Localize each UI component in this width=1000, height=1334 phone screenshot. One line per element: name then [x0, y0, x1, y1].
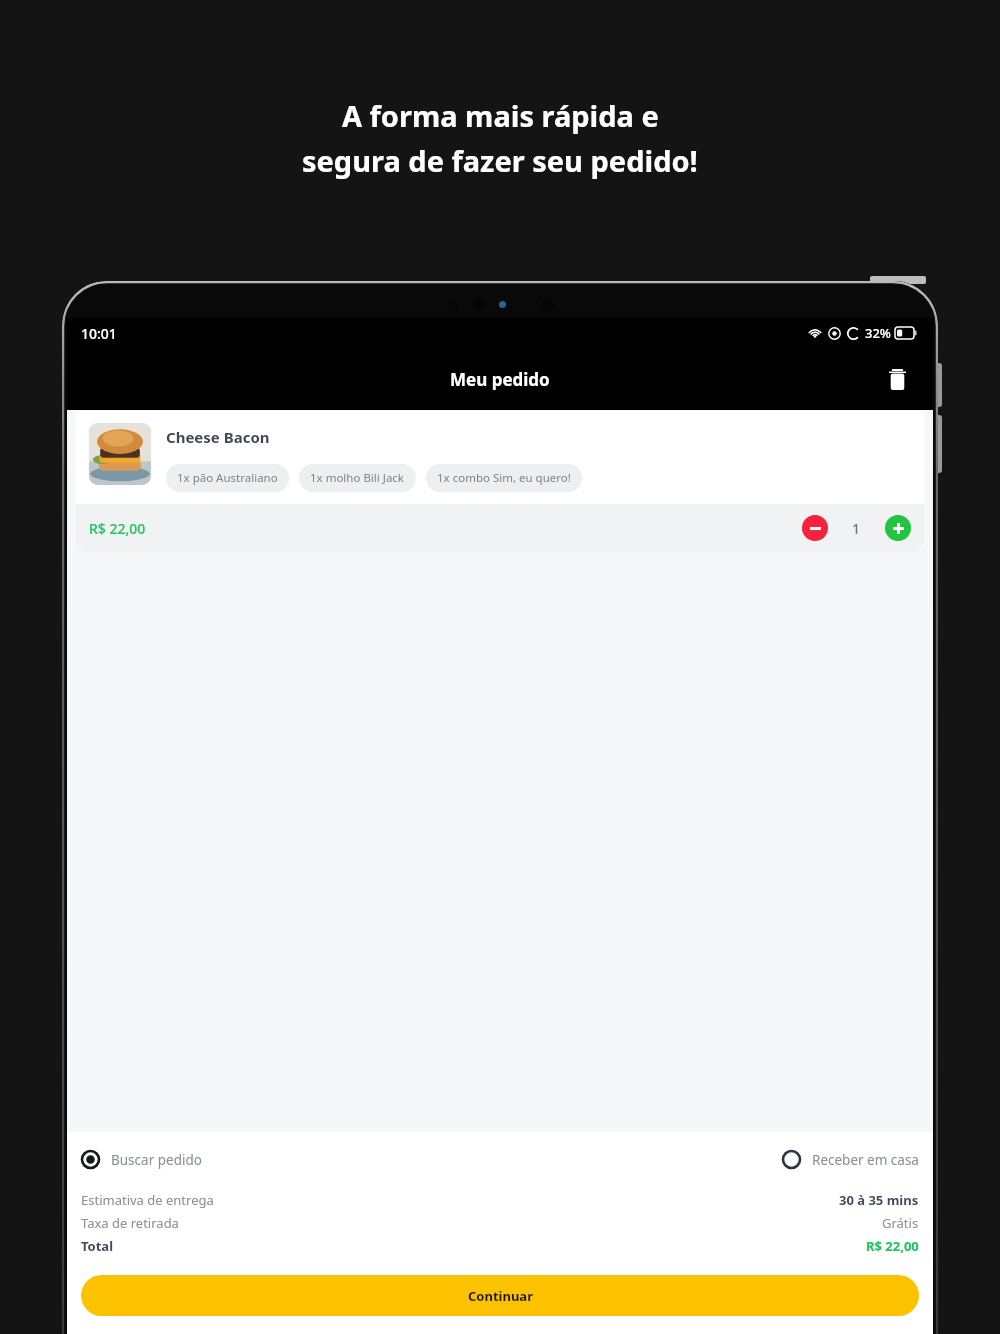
staticText: 30 à 35 mins	[839, 1191, 919, 1209]
button[interactable]: Buscar pedido	[81, 1150, 202, 1169]
staticText: R$ 22,00	[866, 1237, 919, 1255]
staticText: Estimativa de entrega	[81, 1191, 214, 1209]
staticText: Buscar pedido	[111, 1151, 202, 1169]
button[interactable]: Continuar	[81, 1275, 919, 1316]
button[interactable]: 1x combo Sim, eu quero!	[426, 464, 582, 492]
staticText: Grátis	[882, 1214, 919, 1232]
button[interactable]: Cheese Bacon	[76, 411, 924, 552]
staticText: A forma mais rápida e	[342, 96, 659, 135]
button[interactable]: 1x pão Australiano	[166, 464, 289, 492]
button[interactable]: Aumentar	[885, 515, 911, 541]
button[interactable]: Diminuir	[802, 515, 828, 541]
staticText: 1	[852, 519, 861, 538]
staticText: Cheese Bacon	[166, 427, 270, 447]
staticText: 1x molho Bili Jack	[310, 470, 405, 486]
staticText: segura de fazer seu pedido!	[302, 141, 698, 180]
staticText: R$ 22,00	[89, 519, 146, 538]
staticText: Continuar	[468, 1287, 533, 1305]
staticText: Meu pedido	[450, 368, 550, 391]
staticText: 1x combo Sim, eu quero!	[437, 470, 571, 486]
staticText: Total	[81, 1237, 114, 1255]
staticText: Taxa de retirada	[81, 1214, 179, 1232]
staticText: 32%	[865, 324, 891, 342]
staticText: Receber em casa	[812, 1151, 919, 1169]
staticText: 1x pão Australiano	[177, 470, 278, 486]
button[interactable]: Excluir pedido	[877, 359, 917, 399]
button[interactable]: 1x molho Bili Jack	[299, 464, 416, 492]
button[interactable]: Receber em casa	[782, 1150, 919, 1169]
staticText: 10:01	[81, 324, 117, 343]
